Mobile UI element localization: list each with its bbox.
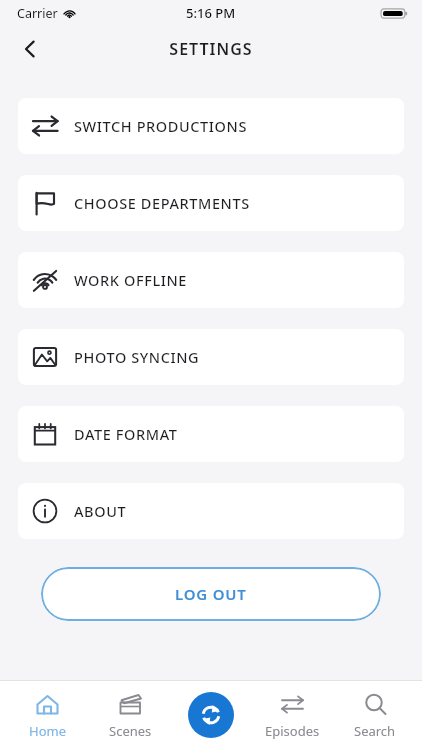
staticText: Search — [354, 722, 396, 740]
button[interactable]: CHOOSE DEPARTMENTS — [18, 175, 404, 231]
staticText: Episodes — [265, 722, 320, 740]
staticText: CHOOSE DEPARTMENTS — [74, 193, 250, 213]
button[interactable]: SWITCH PRODUCTIONS — [18, 98, 404, 154]
staticText: PHOTO SYNCING — [74, 347, 200, 367]
button[interactable]: DATE FORMAT — [18, 406, 404, 462]
button[interactable]: Search — [339, 686, 411, 746]
staticText: SETTINGS — [169, 38, 253, 60]
staticText: Carrier — [17, 5, 58, 22]
button[interactable]: Episodes — [256, 686, 328, 746]
button[interactable]: ABOUT — [18, 483, 404, 539]
staticText: DATE FORMAT — [74, 424, 178, 444]
staticText: WORK OFFLINE — [74, 270, 188, 290]
button[interactable]: WORK OFFLINE — [18, 252, 404, 308]
button[interactable]: PHOTO SYNCING — [18, 329, 404, 385]
staticText: SWITCH PRODUCTIONS — [74, 116, 247, 136]
button[interactable]: Scenes — [94, 686, 166, 746]
staticText: Scenes — [109, 722, 152, 740]
staticText: 5:16 PM — [186, 4, 236, 22]
button[interactable]: Back — [8, 27, 52, 71]
staticText: Home — [29, 722, 66, 740]
staticText: ABOUT — [74, 501, 127, 521]
button[interactable]: Sync — [188, 692, 234, 738]
button[interactable]: Home — [11, 686, 83, 746]
staticText: LOG OUT — [175, 584, 247, 604]
button[interactable]: LOG OUT — [41, 567, 381, 621]
